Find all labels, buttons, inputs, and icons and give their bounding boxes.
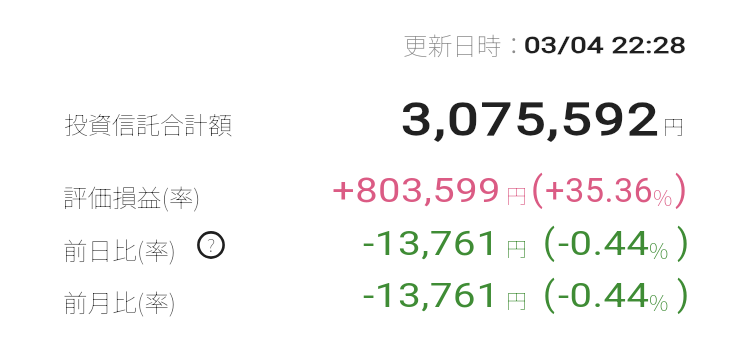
staticText: 3,075,592 bbox=[401, 95, 661, 146]
staticText: % bbox=[649, 233, 669, 265]
staticText: ( bbox=[543, 222, 555, 263]
staticText: -0.44 bbox=[558, 223, 650, 263]
staticText: -13,761 bbox=[363, 223, 500, 263]
staticText: ) bbox=[675, 169, 688, 210]
staticText: % bbox=[649, 285, 669, 317]
staticText: ) bbox=[677, 274, 690, 315]
staticText: ( bbox=[531, 169, 543, 210]
staticText: 円 bbox=[663, 111, 684, 141]
staticText: 前月比(率) bbox=[63, 283, 177, 319]
staticText: 円 bbox=[506, 285, 527, 315]
staticText: +803,599 bbox=[332, 170, 501, 210]
staticText: 03/04 22:28 bbox=[524, 33, 688, 59]
staticText: 円 bbox=[506, 180, 527, 210]
staticText: -0.44 bbox=[558, 275, 650, 315]
staticText: ? bbox=[207, 230, 216, 258]
staticText: 評価損益(率) bbox=[63, 178, 201, 214]
staticText: 円 bbox=[506, 233, 527, 263]
staticText: 更新日時： bbox=[403, 26, 526, 62]
button[interactable]: Help bbox=[197, 231, 225, 259]
staticText: ( bbox=[543, 274, 555, 315]
staticText: +35.36 bbox=[545, 170, 654, 210]
staticText: 投資信託合計額 bbox=[64, 106, 232, 141]
staticText: % bbox=[653, 180, 673, 212]
staticText: ) bbox=[677, 222, 690, 263]
staticText: -13,761 bbox=[363, 275, 500, 315]
staticText: 前日比(率) bbox=[63, 231, 177, 267]
